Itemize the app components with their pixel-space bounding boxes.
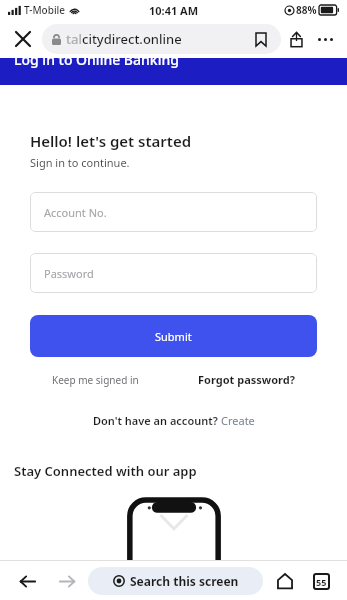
staticText: 55 (316, 576, 327, 588)
staticText: Sign in to continue. (30, 155, 130, 170)
staticText: T-Mobile (24, 3, 66, 17)
staticText: Hello! let's get started (30, 131, 192, 151)
button[interactable]: Submit (30, 315, 317, 357)
button[interactable]: tal (42, 24, 281, 54)
button[interactable]: Create (221, 413, 255, 428)
button[interactable]: Back (10, 564, 44, 598)
staticText: Search this screen (130, 573, 239, 589)
button[interactable]: Account No. (30, 192, 317, 232)
button[interactable]: Tabs, 55 open (305, 565, 337, 597)
button[interactable]: Close (8, 24, 38, 54)
button[interactable]: Bookmark (251, 29, 271, 49)
button[interactable]: Password (30, 253, 317, 293)
staticText: Create (221, 413, 255, 428)
staticText: Forgot password? (198, 372, 295, 387)
button[interactable]: Forgot password? (198, 372, 295, 387)
button[interactable]: Forward (50, 564, 84, 598)
staticText: Password (44, 266, 94, 281)
staticText: Stay Connected with our app (14, 462, 197, 480)
staticText: tal (66, 30, 82, 48)
staticText: citydirect.online (82, 30, 182, 48)
button[interactable]: Share (281, 24, 311, 54)
button[interactable]: Keep me signed in (52, 373, 139, 387)
staticText: 88% (296, 3, 317, 17)
button[interactable]: Home (269, 565, 301, 597)
button[interactable]: More options (311, 25, 339, 53)
staticText: Keep me signed in (52, 373, 139, 387)
staticText: Account No. (44, 205, 107, 220)
staticText: Submit (155, 329, 192, 344)
staticText: 10:41 AM (149, 3, 199, 18)
staticText: Log in to Online Banking (14, 50, 179, 69)
staticText: Don't have an account? (93, 413, 221, 428)
button[interactable]: Search this screen (88, 567, 263, 595)
